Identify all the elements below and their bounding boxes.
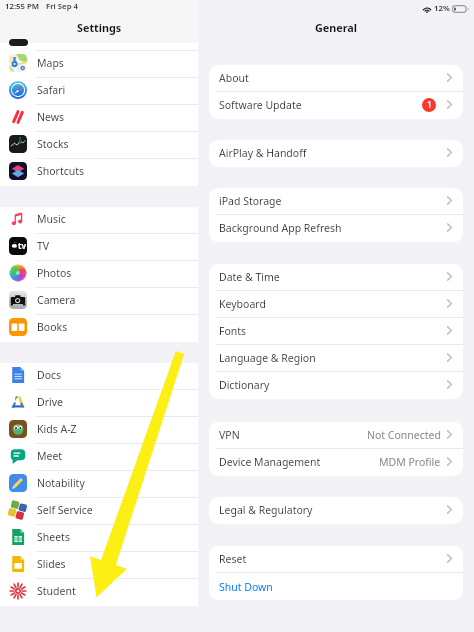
- staticText: Reset: [219, 552, 247, 566]
- staticText: Shortcuts: [37, 164, 85, 178]
- staticText: Student: [37, 584, 76, 598]
- staticText: Settings: [77, 20, 122, 35]
- button[interactable]: Docs: [0, 363, 198, 390]
- button[interactable]: Meet: [0, 444, 198, 471]
- button[interactable]: Software Update: [209, 92, 463, 119]
- staticText: Meet: [37, 449, 63, 463]
- staticText: Camera: [37, 293, 76, 307]
- button[interactable]: VPN: [209, 422, 463, 449]
- staticText: Keyboard: [219, 297, 266, 311]
- button[interactable]: iPad Storage: [209, 188, 463, 215]
- staticText: Legal & Regulatory: [219, 503, 313, 517]
- staticText: TV: [37, 239, 50, 253]
- button[interactable]: Background App Refresh: [209, 215, 463, 242]
- staticText: VPN: [219, 428, 240, 442]
- button[interactable]: Reset: [209, 546, 463, 573]
- staticText: Books: [37, 320, 68, 334]
- button[interactable]: Books: [0, 315, 198, 342]
- button[interactable]: Device Management: [209, 449, 463, 476]
- button[interactable]: Sheets: [0, 525, 198, 552]
- button[interactable]: Photos: [0, 261, 198, 288]
- button[interactable]: Self Service: [0, 498, 198, 525]
- button[interactable]: About: [209, 65, 463, 92]
- staticText: News: [37, 110, 64, 124]
- button[interactable]: Language & Region: [209, 345, 463, 372]
- staticText: Fonts: [219, 324, 247, 338]
- staticText: Not Connected: [367, 428, 441, 442]
- staticText: iPad Storage: [219, 194, 282, 208]
- staticText: Photos: [37, 266, 72, 280]
- button[interactable]: Safari: [0, 78, 198, 105]
- button[interactable]: tv: [0, 234, 198, 261]
- staticText: Device Management: [219, 455, 321, 469]
- staticText: MDM Profile: [379, 455, 441, 469]
- button[interactable]: Shut Down: [209, 573, 463, 600]
- other: Wi-Fi: [422, 5, 432, 13]
- button[interactable]: Camera: [0, 288, 198, 315]
- staticText: Kids A-Z: [37, 422, 77, 436]
- button[interactable]: News: [0, 105, 198, 132]
- button[interactable]: Date & Time: [209, 264, 463, 291]
- button[interactable]: Drive: [0, 390, 198, 417]
- button[interactable]: Dictionary: [209, 372, 463, 399]
- staticText: 1: [427, 99, 432, 111]
- staticText: Background App Refresh: [219, 221, 342, 235]
- button[interactable]: Maps: [0, 51, 198, 78]
- staticText: Drive: [37, 395, 63, 409]
- staticText: About: [219, 71, 249, 85]
- staticText: Docs: [37, 368, 62, 382]
- staticText: Safari: [37, 83, 66, 97]
- staticText: Notability: [37, 476, 85, 490]
- staticText: 12:55 PM: [5, 1, 40, 12]
- button[interactable]: Fonts: [209, 318, 463, 345]
- staticText: Date & Time: [219, 270, 280, 284]
- button[interactable]: Shortcuts: [0, 159, 198, 186]
- staticText: Maps: [37, 56, 64, 70]
- staticText: Dictionary: [219, 378, 270, 392]
- button[interactable]: Music: [0, 207, 198, 234]
- staticText: Self Service: [37, 503, 93, 517]
- button[interactable]: Kids A-Z: [0, 417, 198, 444]
- staticText: Music: [37, 212, 66, 226]
- button[interactable]: Slides: [0, 552, 198, 579]
- staticText: 12%: [434, 3, 450, 14]
- staticText: Language & Region: [219, 351, 316, 365]
- staticText: Slides: [37, 557, 66, 571]
- other: Battery: [452, 5, 469, 13]
- button[interactable]: Student: [0, 579, 198, 606]
- staticText: Software Update: [219, 98, 302, 112]
- staticText: General: [315, 20, 358, 35]
- button[interactable]: Keyboard: [209, 291, 463, 318]
- staticText: Fri Sep 4: [46, 1, 79, 12]
- staticText: Stocks: [37, 137, 69, 151]
- staticText: AirPlay & Handoff: [219, 146, 307, 160]
- button[interactable]: Notability: [0, 471, 198, 498]
- button[interactable]: Stocks: [0, 132, 198, 159]
- staticText: tv: [18, 240, 27, 251]
- button[interactable]: Legal & Regulatory: [209, 497, 463, 524]
- staticText: Sheets: [37, 530, 70, 544]
- staticText: Shut Down: [219, 580, 273, 594]
- button[interactable]: AirPlay & Handoff: [209, 140, 463, 167]
